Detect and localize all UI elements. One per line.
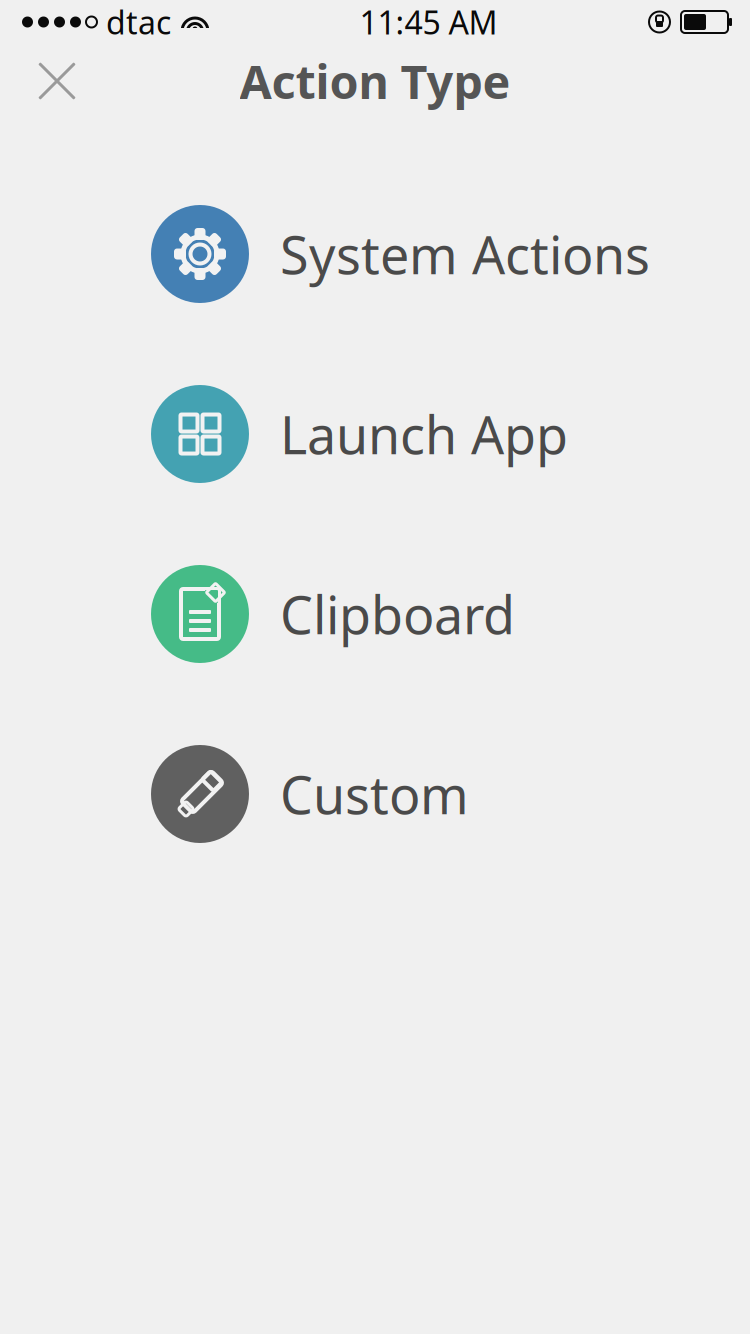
staticText: System Actions xyxy=(280,219,650,289)
staticText: 11:45 AM xyxy=(359,1,497,43)
button[interactable]: Custom xyxy=(0,734,750,854)
staticText: Clipboard xyxy=(280,579,515,649)
button[interactable]: Clipboard xyxy=(0,554,750,674)
staticText: Action Type xyxy=(239,50,510,112)
button[interactable]: Launch App xyxy=(0,374,750,494)
button[interactable]: Close xyxy=(0,46,98,116)
button[interactable]: System Actions xyxy=(0,194,750,314)
staticText: Custom xyxy=(280,759,469,829)
staticText: Launch App xyxy=(280,399,568,469)
staticText: dtac xyxy=(106,1,171,43)
